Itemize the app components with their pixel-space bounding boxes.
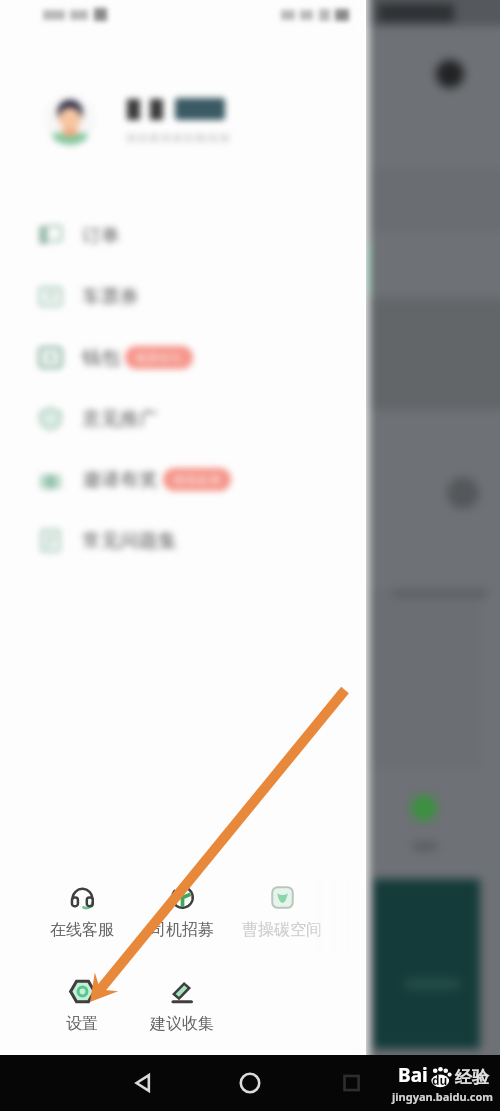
button[interactable]: Recent apps: [330, 1061, 374, 1105]
button[interactable]: 曹操碳空间: [232, 880, 332, 944]
staticText: 在线客服: [50, 920, 114, 940]
staticText: 意见推广: [82, 407, 158, 431]
button[interactable]: 车票券: [0, 266, 366, 327]
button[interactable]: [0, 95, 366, 145]
staticText: 车票券: [82, 285, 139, 309]
staticText: 邀请有奖: [82, 468, 158, 492]
button[interactable]: 在线客服: [32, 880, 132, 944]
staticText: 领券有礼: [135, 350, 183, 365]
button[interactable]: 设置: [32, 974, 132, 1038]
button[interactable]: 常见问题集: [0, 510, 366, 571]
button[interactable]: 钱包: [0, 327, 366, 388]
staticText: 设置: [66, 1014, 98, 1034]
button[interactable]: 意见推广: [0, 388, 366, 449]
staticText: Bai: [398, 1062, 428, 1088]
button[interactable]: Home: [228, 1061, 272, 1105]
staticText: 得现金券: [173, 472, 221, 487]
staticText: du: [432, 1072, 448, 1088]
staticText: jingyan.baidu.com: [392, 1089, 494, 1104]
button[interactable]: 邀请有奖: [0, 449, 366, 510]
staticText: 曹操碳空间: [242, 920, 322, 940]
button[interactable]: 建议收集: [132, 974, 232, 1038]
button[interactable]: Back: [122, 1061, 166, 1105]
staticText: 建议收集: [150, 1014, 214, 1034]
staticText: 司机招募: [150, 920, 214, 940]
staticText: 订单: [82, 224, 120, 248]
staticText: 常见问题集: [82, 529, 177, 553]
button[interactable]: 订单: [0, 205, 366, 266]
staticText: 钱包: [82, 346, 120, 370]
button[interactable]: 司机招募: [132, 880, 232, 944]
staticText: 经验: [455, 1067, 489, 1088]
